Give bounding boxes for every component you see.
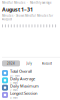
staticText: July	[26, 62, 31, 65]
staticText: August	[42, 62, 52, 65]
staticText: 5 min	[10, 96, 18, 99]
button[interactable]: August	[38, 60, 56, 66]
staticText: 7 min	[10, 88, 18, 92]
staticText: 31 min	[10, 74, 20, 77]
button[interactable]: July	[20, 60, 38, 66]
staticText: Minutes · Shows Mindful Minutes for Augu…	[2, 14, 53, 21]
staticText: 1 min	[10, 81, 18, 85]
staticText: Longest Session	[10, 90, 37, 96]
button[interactable]: Daily Maximum	[0, 84, 60, 91]
staticText: Mindful Minutes · Monthly average	[2, 1, 52, 4]
staticText: Total Overall	[10, 69, 32, 74]
staticText: Daily Maximum	[10, 83, 39, 88]
button[interactable]: Daily Average	[0, 77, 60, 84]
button[interactable]: Total Overall	[0, 69, 60, 77]
staticText: Daily Average	[10, 76, 35, 81]
staticText: 2024	[7, 62, 15, 65]
staticText: August 1–31	[2, 6, 33, 13]
button[interactable]: Longest Session	[0, 91, 60, 99]
button[interactable]: 2024	[2, 60, 20, 66]
